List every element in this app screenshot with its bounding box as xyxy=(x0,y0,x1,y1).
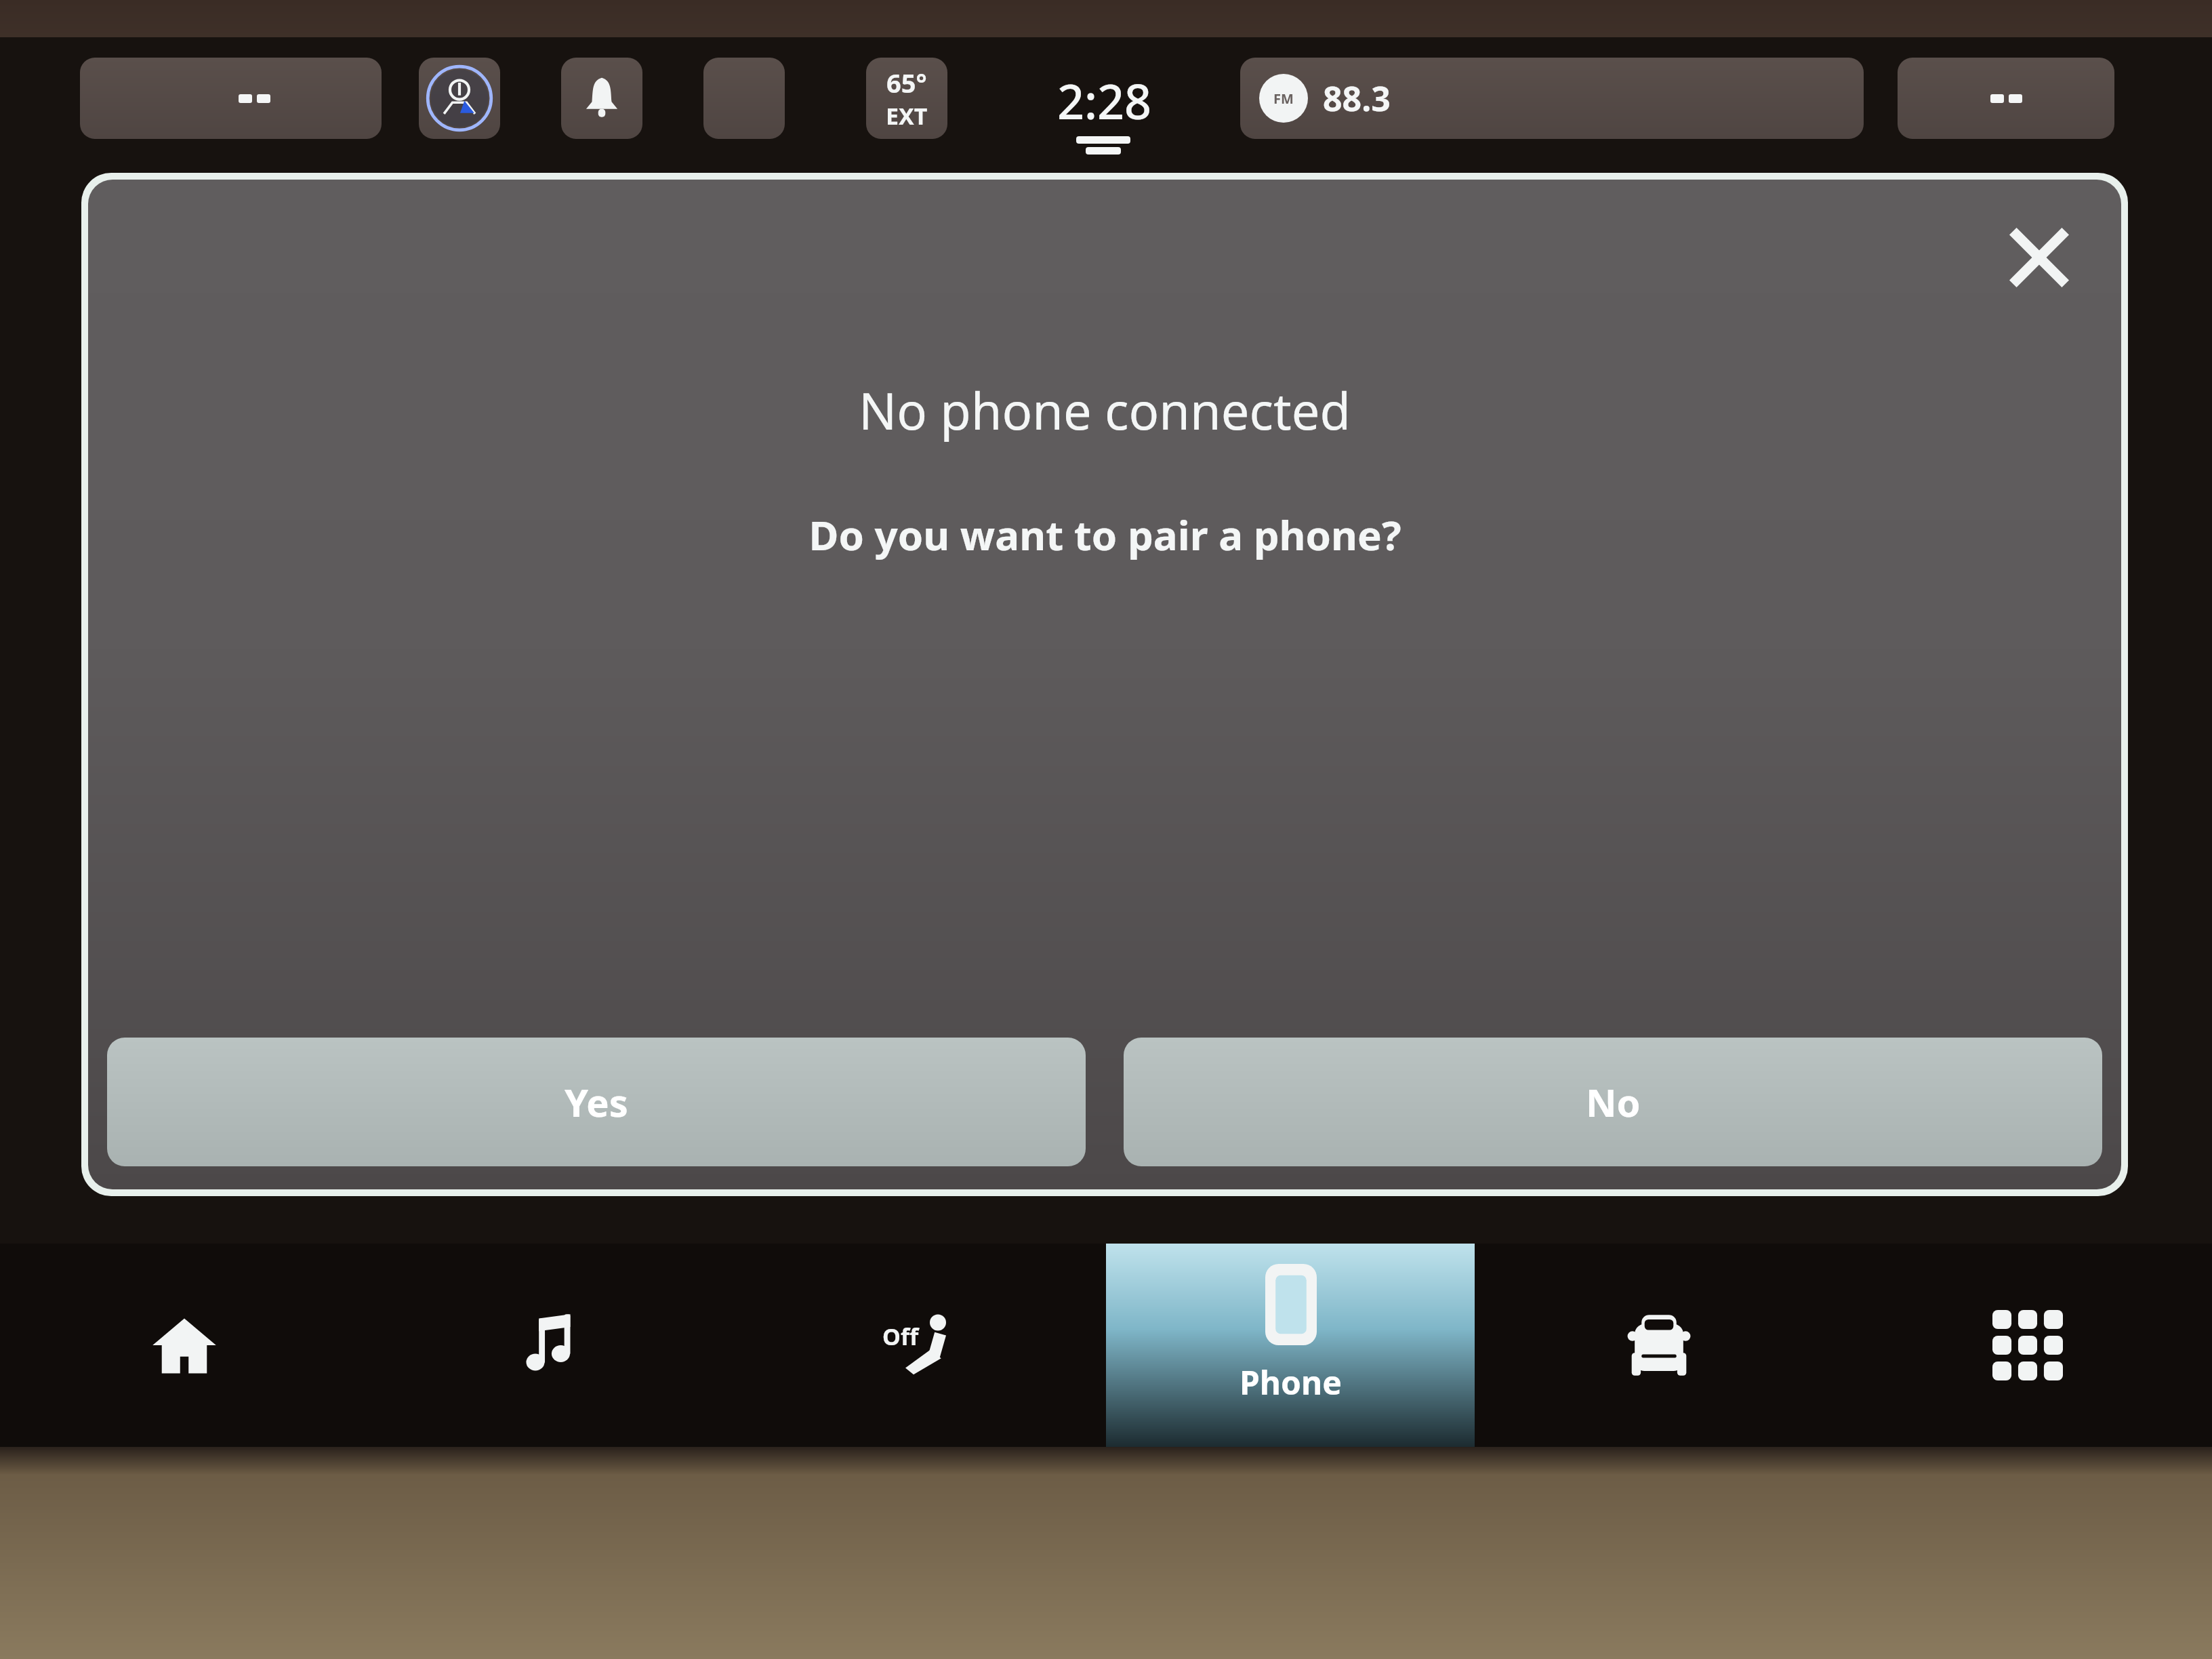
button[interactable]: Yes xyxy=(107,1038,1086,1166)
button[interactable]: No xyxy=(1124,1038,2102,1166)
button[interactable]: Quick setting xyxy=(703,58,785,139)
staticText: 65° xyxy=(886,65,927,100)
staticText: No xyxy=(1586,1076,1641,1128)
button[interactable]: Driver profile xyxy=(419,58,500,139)
button[interactable]: Left info tile xyxy=(80,58,382,139)
staticText: 88.3 xyxy=(1323,75,1391,121)
staticText: EXT xyxy=(886,100,928,131)
button[interactable]: Exterior temperature 65 degrees xyxy=(866,58,947,139)
button[interactable]: Media xyxy=(369,1244,737,1447)
button[interactable]: Close xyxy=(1988,207,2090,308)
button[interactable]: Climate, off xyxy=(737,1244,1106,1447)
staticText: Do you want to pair a phone? xyxy=(808,507,1401,562)
button[interactable]: Vehicle xyxy=(1475,1244,1843,1447)
staticText: Off xyxy=(882,1321,919,1352)
staticText: No phone connected xyxy=(859,376,1351,445)
button[interactable]: Notifications xyxy=(561,58,642,139)
staticText: Yes xyxy=(565,1076,628,1128)
button[interactable]: Right info tile xyxy=(1898,58,2114,139)
button[interactable]: Apps xyxy=(1843,1244,2212,1447)
staticText: Phone xyxy=(1240,1360,1342,1404)
staticText: 2:28 xyxy=(1057,68,1152,133)
button[interactable]: Phone xyxy=(1106,1244,1475,1447)
staticText: FM xyxy=(1273,89,1294,108)
button[interactable]: Radio 88.3 FM xyxy=(1240,58,1864,139)
button[interactable]: Home xyxy=(0,1244,369,1447)
